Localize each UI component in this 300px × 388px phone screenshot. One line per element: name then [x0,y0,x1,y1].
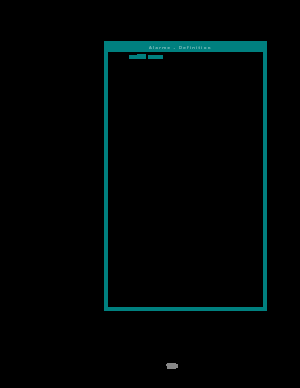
staticText: Alarme - Definition [149,44,212,50]
button[interactable]: Alarme - Definition [104,41,267,52]
